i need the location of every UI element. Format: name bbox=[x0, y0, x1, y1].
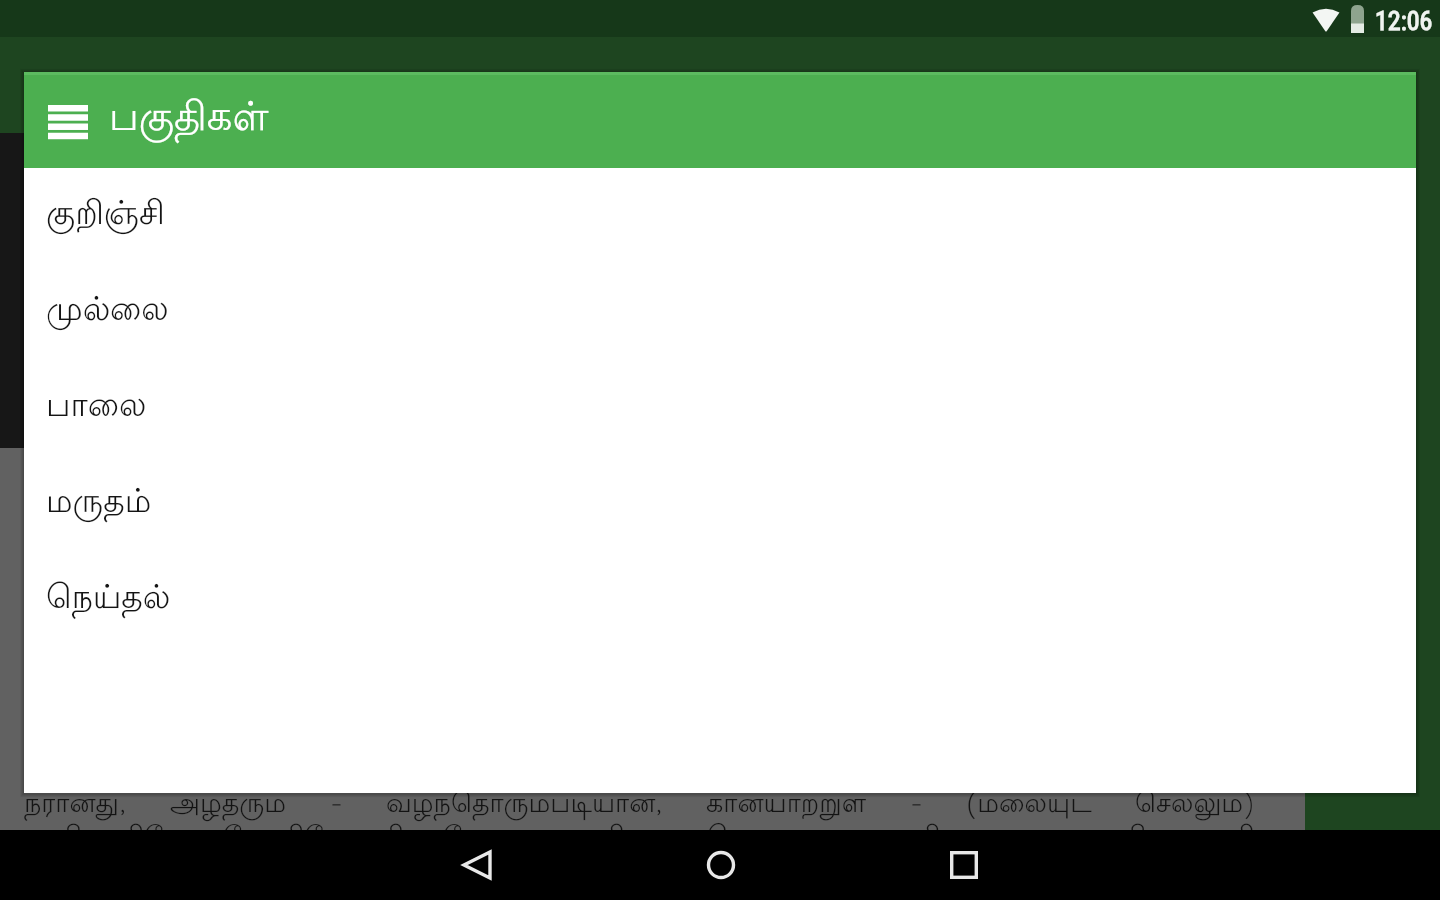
staticText: மாநிலததிலே bbox=[24, 822, 186, 855]
button[interactable]: Back bbox=[437, 830, 517, 900]
staticText: மருதம் bbox=[46, 484, 152, 524]
staticText: வழநதொருமபடியான, bbox=[386, 789, 663, 822]
other: Battery bbox=[1351, 5, 1364, 33]
staticText: மேறகிலே bbox=[223, 822, 346, 855]
staticText: நரானது, bbox=[24, 789, 127, 822]
staticText: 12:06 bbox=[1375, 6, 1433, 36]
button[interactable]: Home bbox=[681, 830, 761, 900]
button[interactable]: மருதம் bbox=[24, 456, 1416, 552]
staticText: பகுதிகள் bbox=[109, 96, 269, 145]
staticText: காணபுகினற bbox=[517, 822, 670, 855]
staticText: முல்லை bbox=[46, 292, 169, 332]
button[interactable]: குறிஞ்சி bbox=[24, 168, 1416, 264]
staticText: செலலும) bbox=[1135, 789, 1255, 822]
staticText: ஒதத bbox=[1029, 822, 1087, 855]
other: Wi-Fi bbox=[1312, 4, 1340, 32]
staticText: பாலை bbox=[46, 388, 147, 428]
button[interactable]: பாலை bbox=[24, 360, 1416, 456]
staticText: - bbox=[910, 789, 923, 822]
button[interactable]: Recent apps bbox=[924, 830, 1004, 900]
staticText: தொடரும bbox=[707, 822, 828, 855]
staticText: அழதரும bbox=[170, 789, 287, 822]
button[interactable]: முல்லை bbox=[24, 264, 1416, 360]
staticText: கானயாறறுள bbox=[706, 789, 867, 822]
staticText: (மலையுட bbox=[966, 789, 1092, 822]
staticText: கிழககே bbox=[382, 822, 480, 855]
staticText: - bbox=[330, 789, 343, 822]
button[interactable]: நெய்தல் bbox=[24, 552, 1416, 648]
button[interactable]: Open navigation menu bbox=[28, 83, 108, 163]
staticText: ஆறறினை bbox=[865, 822, 993, 855]
staticText: குறிஞ்சி bbox=[46, 196, 165, 236]
staticText: நெய்தல் bbox=[46, 580, 171, 620]
staticText: நிலபபகுதி bbox=[1124, 822, 1255, 855]
